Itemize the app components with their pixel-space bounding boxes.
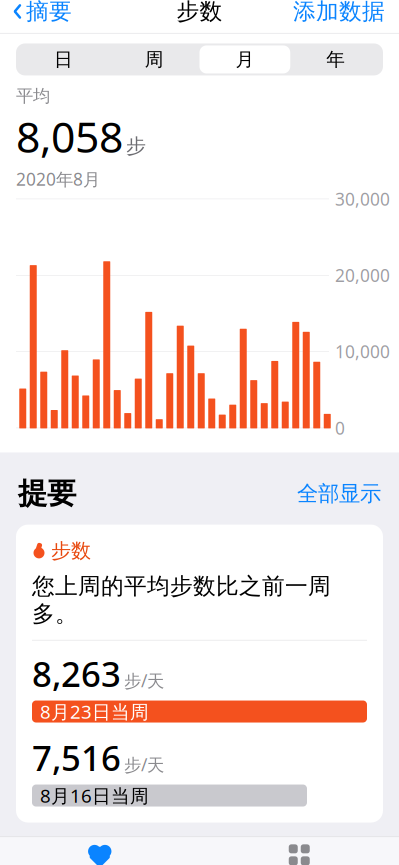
staticText: 提要: [18, 475, 76, 511]
staticText: 2020年8月: [16, 167, 100, 190]
button[interactable]: 年: [290, 45, 381, 73]
staticText: 您上周的平均步数比之前一周多。: [32, 572, 331, 628]
staticText: 20,000: [335, 264, 390, 287]
staticText: 年: [326, 48, 345, 71]
staticText: 8月16日当周: [40, 783, 149, 808]
staticText: 8,058: [16, 108, 123, 164]
staticText: 0: [335, 416, 345, 439]
button[interactable]: 摘要: [0, 836, 199, 865]
staticText: 7,516: [32, 734, 121, 780]
staticText: 步数: [51, 539, 91, 563]
button[interactable]: 日: [18, 45, 109, 73]
button[interactable]: 浏览: [199, 837, 399, 865]
button[interactable]: 添加数据: [279, 0, 399, 33]
staticText: 月: [235, 48, 254, 71]
staticText: 添加数据: [293, 0, 385, 25]
button[interactable]: 摘要: [0, 0, 84, 33]
button[interactable]: 全部显示: [287, 474, 381, 513]
button[interactable]: 周: [109, 45, 200, 73]
staticText: 30,000: [335, 187, 390, 210]
staticText: 8,263: [32, 650, 121, 696]
staticText: 摘要: [26, 0, 72, 25]
button[interactable]: 步数: [0, 525, 399, 822]
staticText: 步数: [176, 0, 222, 25]
staticText: 10,000: [335, 340, 390, 363]
staticText: 步/天: [124, 753, 164, 776]
staticText: 平均: [16, 85, 50, 107]
staticText: 步/天: [124, 669, 164, 692]
staticText: 步: [126, 134, 146, 158]
staticText: 日: [54, 48, 73, 71]
staticText: 8月23日当周: [40, 699, 149, 724]
button[interactable]: 月: [199, 45, 290, 73]
staticText: 周: [145, 48, 164, 71]
staticText: 全部显示: [297, 480, 381, 507]
